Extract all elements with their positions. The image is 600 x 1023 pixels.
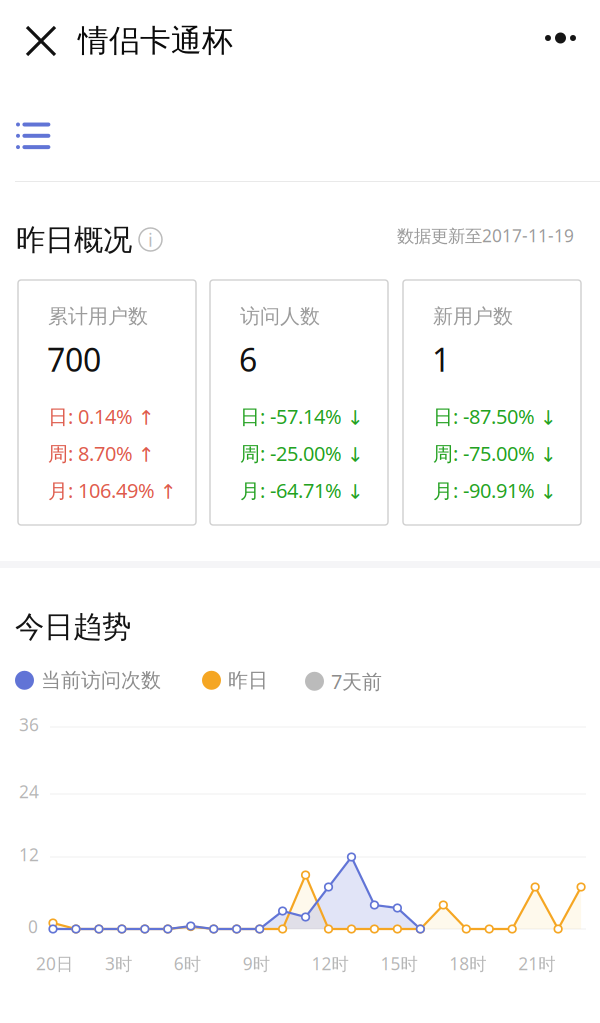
staticText: i: [148, 227, 153, 252]
staticText: 21时: [518, 952, 555, 975]
staticText: 3时: [105, 952, 132, 975]
staticText: 月: -90.91% ↓: [433, 477, 557, 504]
staticText: 月: 106.49% ↑: [48, 477, 177, 504]
button[interactable]: Close: [13, 13, 69, 69]
staticText: 当前访问次数: [41, 668, 161, 693]
staticText: 700: [47, 338, 101, 380]
staticText: 0: [28, 915, 38, 938]
staticText: 15时: [380, 952, 417, 975]
staticText: 累计用户数: [48, 304, 148, 329]
staticText: 周: -75.00% ↓: [433, 440, 557, 467]
button[interactable]: List view: [0, 101, 72, 189]
staticText: 1: [432, 338, 450, 380]
staticText: 新用户数: [433, 304, 513, 329]
staticText: 7天前: [331, 668, 382, 695]
staticText: 日: -57.14% ↓: [240, 403, 364, 430]
staticText: 情侣卡通杯: [78, 22, 233, 60]
staticText: 20日: [36, 952, 73, 975]
staticText: 月: -64.71% ↓: [240, 477, 364, 504]
staticText: 36: [19, 713, 39, 736]
staticText: 今日趋势: [15, 609, 131, 645]
staticText: 访问人数: [240, 304, 320, 329]
staticText: 9时: [243, 952, 270, 975]
staticText: 24: [19, 780, 39, 803]
staticText: 12时: [311, 952, 348, 975]
staticText: 日: -87.50% ↓: [433, 403, 557, 430]
staticText: 18时: [449, 952, 486, 975]
staticText: 数据更新至2017-11-19: [397, 224, 574, 247]
staticText: 昨日概况: [16, 222, 132, 258]
staticText: 周: 8.70% ↑: [48, 440, 155, 467]
staticText: 昨日: [228, 668, 268, 693]
button[interactable]: More options: [530, 10, 600, 66]
staticText: 周: -25.00% ↓: [240, 440, 364, 467]
staticText: 6: [239, 338, 257, 380]
staticText: 6时: [174, 952, 201, 975]
staticText: 日: 0.14% ↑: [48, 403, 155, 430]
staticText: 12: [19, 843, 39, 866]
